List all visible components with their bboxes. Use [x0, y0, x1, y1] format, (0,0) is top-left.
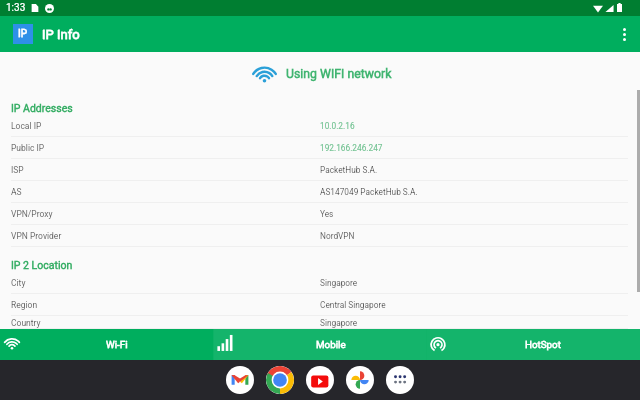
button[interactable]: Mobile [214, 329, 427, 360]
button[interactable]: All apps [386, 366, 414, 394]
staticText: City [11, 278, 26, 288]
button[interactable]: Photos [346, 366, 374, 394]
button[interactable]: More options [608, 16, 640, 52]
staticText: HotSpot [525, 339, 561, 350]
staticText: Wi-Fi [106, 339, 128, 350]
other: WiFi connected [252, 65, 277, 83]
staticText: AS [11, 187, 22, 197]
button[interactable]: VPN Provider [0, 225, 640, 247]
button[interactable]: WiFi connected [252, 65, 392, 83]
button[interactable]: Chrome [266, 366, 294, 394]
staticText: Local IP [11, 121, 42, 131]
button[interactable]: VPN/Proxy [0, 203, 640, 225]
staticText: VPN/Proxy [11, 209, 53, 219]
staticText: 10.0.2.16 [320, 121, 355, 131]
staticText: Using WIFI network [286, 67, 392, 81]
staticText: PacketHub S.A. [320, 165, 378, 175]
button[interactable]: Region [0, 294, 640, 316]
button[interactable]: City [0, 272, 640, 294]
staticText: IP Info [42, 27, 80, 42]
staticText: Yes [320, 209, 334, 219]
staticText: NordVPN [320, 231, 355, 241]
button[interactable]: Country [0, 316, 640, 329]
button[interactable]: YouTube [306, 366, 334, 394]
button[interactable]: Gmail [226, 366, 254, 394]
staticText: IP 2 Location [11, 259, 73, 271]
staticText: 1:33 [6, 2, 26, 14]
button[interactable]: Local IP [0, 115, 640, 137]
staticText: Singapore [320, 278, 358, 288]
button[interactable]: AS [0, 181, 640, 203]
staticText: VPN Provider [11, 231, 62, 241]
staticText: 192.166.246.247 [320, 143, 383, 153]
staticText: IP Addresses [11, 102, 73, 114]
button[interactable]: Public IP [0, 137, 640, 159]
staticText: AS147049 PacketHub S.A. [320, 187, 418, 197]
button[interactable]: ISP [0, 159, 640, 181]
staticText: Mobile [316, 339, 346, 350]
staticText: Central Singapore [320, 300, 386, 310]
button[interactable]: Wi-Fi [0, 329, 214, 360]
staticText: Public IP [11, 143, 45, 153]
staticText: ISP [11, 165, 24, 175]
staticText: IP [18, 28, 28, 40]
staticText: Country [11, 318, 41, 328]
staticText: Region [11, 300, 38, 310]
staticText: Singapore [320, 318, 358, 328]
button[interactable]: HotSpot [427, 329, 640, 360]
